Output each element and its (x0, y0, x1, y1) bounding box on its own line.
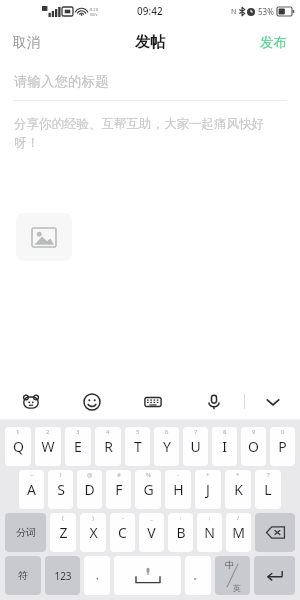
staticText: 。 (193, 569, 203, 582)
staticText: 发帖 (135, 33, 165, 52)
staticText: % (146, 471, 151, 479)
button[interactable]: Keyboard layout (122, 383, 183, 420)
staticText: ? (267, 471, 270, 479)
staticText: 分享你的经验、互帮互助，大家一起痛风快好呀！ (14, 116, 286, 151)
staticText: S (57, 480, 65, 499)
button[interactable]: N (197, 513, 222, 552)
staticText: ~ (30, 471, 34, 479)
staticText: Z (59, 523, 68, 542)
staticText: ) (92, 514, 94, 522)
staticText: 0 (281, 428, 285, 436)
staticText: - (177, 471, 179, 479)
button[interactable]: 发布 (247, 26, 300, 59)
button[interactable]: 分享你的经验、互帮互助，大家一起痛风快好呀！ (0, 101, 300, 151)
button[interactable]: I (212, 427, 237, 466)
button[interactable]: A (19, 470, 44, 509)
staticText: H (173, 480, 184, 499)
button[interactable]: S (48, 470, 73, 509)
button[interactable]: D (77, 470, 102, 509)
button[interactable]: Hide keyboard (245, 383, 300, 420)
button[interactable]: M (226, 513, 251, 552)
button[interactable]: Add photo (16, 213, 72, 261)
staticText: 1 (16, 428, 20, 436)
staticText: 9 (252, 428, 256, 436)
button[interactable]: E (65, 427, 91, 466)
button[interactable]: Baidu input (0, 383, 61, 420)
staticText: W (41, 437, 55, 456)
button[interactable]: 分词 (5, 513, 46, 552)
staticText: A (27, 480, 36, 499)
button[interactable]: U (183, 427, 208, 466)
button[interactable]: Q (5, 427, 31, 466)
button[interactable]: V (139, 513, 164, 552)
button[interactable]: 取消 (0, 26, 53, 59)
button[interactable]: ， (84, 556, 110, 595)
button[interactable]: Voice input (183, 383, 244, 420)
staticText: I (222, 437, 227, 456)
staticText: 09:42 (137, 4, 163, 18)
button[interactable]: C (110, 513, 135, 552)
staticText: 7 (194, 428, 198, 436)
staticText: - (122, 514, 124, 522)
staticText: V (147, 523, 156, 542)
staticText: 发布 (260, 34, 287, 51)
staticText: Y (163, 437, 171, 456)
button[interactable]: 请输入您的标题 (0, 62, 300, 100)
staticText: 英 (233, 583, 241, 593)
button[interactable]: X (80, 513, 106, 552)
button[interactable]: Backspace (255, 513, 295, 552)
staticText: 4 (106, 428, 110, 436)
staticText: 分词 (16, 526, 36, 539)
staticText: P (278, 437, 287, 456)
button[interactable]: L (255, 470, 281, 509)
button[interactable]: P (270, 427, 295, 466)
staticText: E (74, 437, 82, 456)
staticText: X (89, 523, 98, 542)
staticText: * (236, 471, 240, 479)
button[interactable]: Space (114, 556, 181, 595)
button[interactable]: Y (154, 427, 179, 466)
button[interactable]: 123 (45, 556, 80, 595)
staticText: T (134, 437, 142, 456)
button[interactable]: Emoji (61, 383, 122, 420)
staticText: 请输入您的标题 (14, 73, 109, 90)
staticText: _ (150, 514, 153, 522)
staticText: L (264, 480, 272, 499)
staticText: 3 (76, 428, 80, 436)
staticText: N (204, 523, 215, 542)
staticText: 2 (46, 428, 50, 436)
button[interactable]: F (106, 470, 131, 509)
button[interactable]: Z (50, 513, 76, 552)
button[interactable]: R (95, 427, 121, 466)
button[interactable]: B (168, 513, 193, 552)
staticText: D (84, 480, 95, 499)
staticText: J (206, 480, 210, 499)
button[interactable]: W (35, 427, 61, 466)
button[interactable]: 。 (185, 556, 211, 595)
staticText: M (232, 523, 245, 542)
staticText: 8.20 (90, 7, 98, 12)
staticText: C (118, 523, 127, 542)
staticText: ( (62, 514, 64, 522)
staticText: 取消 (13, 34, 40, 51)
staticText: G (143, 480, 154, 499)
button[interactable]: 符 (5, 556, 41, 595)
staticText: 符 (18, 569, 28, 582)
staticText: ， (92, 569, 102, 582)
staticText: O (248, 437, 259, 456)
button[interactable]: K (225, 470, 251, 509)
button[interactable]: H (165, 470, 191, 509)
staticText: / (237, 514, 240, 522)
button[interactable]: T (125, 427, 150, 466)
staticText: B (176, 523, 186, 542)
button[interactable]: O (241, 427, 266, 466)
button[interactable]: Chinese English toggle (215, 556, 250, 595)
staticText: R (104, 437, 113, 456)
button[interactable]: J (195, 470, 221, 509)
button[interactable]: Enter (254, 556, 295, 595)
staticText: # (117, 471, 121, 479)
staticText: 123 (54, 569, 72, 583)
staticText: F (115, 480, 123, 499)
staticText: 中 (225, 559, 234, 570)
button[interactable]: G (135, 470, 161, 509)
